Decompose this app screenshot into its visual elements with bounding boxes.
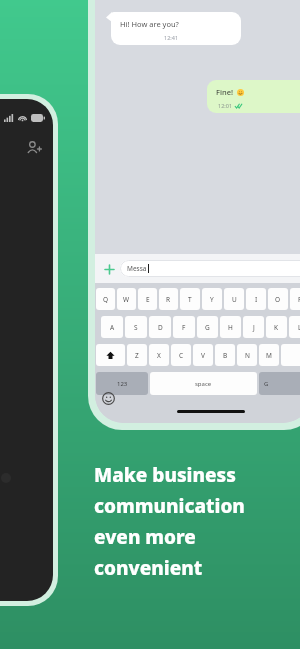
button[interactable]: G bbox=[259, 372, 300, 395]
button[interactable]: D bbox=[149, 316, 171, 338]
staticText: F bbox=[182, 323, 186, 332]
staticText: D bbox=[158, 323, 163, 332]
staticText: 123 bbox=[117, 380, 128, 388]
staticText: A bbox=[110, 323, 115, 332]
staticText: 12:01 bbox=[218, 102, 233, 109]
staticText: even more bbox=[94, 524, 196, 550]
staticText: 12:41 bbox=[164, 34, 179, 41]
staticText: G bbox=[205, 323, 210, 332]
staticText: N bbox=[245, 351, 250, 360]
button[interactable]: P bbox=[290, 288, 300, 310]
staticText: S bbox=[134, 323, 138, 332]
button[interactable]: Add contact bbox=[23, 137, 45, 159]
staticText: K bbox=[274, 323, 279, 332]
button[interactable]: T bbox=[180, 288, 200, 310]
button[interactable]: A bbox=[101, 316, 123, 338]
button[interactable]: space bbox=[150, 372, 257, 395]
button[interactable]: Attach bbox=[101, 261, 117, 277]
button[interactable]: M bbox=[259, 344, 279, 366]
button[interactable]: Shift bbox=[96, 344, 125, 366]
staticText: U bbox=[232, 295, 237, 304]
staticText: T bbox=[188, 295, 192, 304]
button[interactable]: E bbox=[138, 288, 157, 310]
button[interactable]: F bbox=[173, 316, 195, 338]
staticText: Make business bbox=[94, 462, 236, 488]
button[interactable]: Fine! bbox=[207, 80, 300, 113]
button[interactable]: G bbox=[197, 316, 218, 338]
staticText: R bbox=[166, 295, 171, 304]
staticText: Fine! bbox=[216, 87, 234, 97]
button[interactable]: Q bbox=[96, 288, 115, 310]
staticText: Messa bbox=[127, 264, 147, 273]
staticText: B bbox=[223, 351, 228, 360]
staticText: Q bbox=[103, 295, 109, 304]
staticText: H bbox=[228, 323, 233, 332]
staticText: J bbox=[253, 323, 255, 332]
staticText: O bbox=[275, 295, 281, 304]
button[interactable]: Backspace bbox=[281, 344, 300, 366]
staticText: M bbox=[266, 351, 272, 360]
button[interactable]: W bbox=[117, 288, 136, 310]
button[interactable]: J bbox=[243, 316, 264, 338]
staticText: space bbox=[195, 380, 212, 388]
staticText: P bbox=[298, 295, 300, 304]
button[interactable]: H bbox=[220, 316, 241, 338]
button[interactable]: R bbox=[159, 288, 178, 310]
button[interactable]: I bbox=[246, 288, 266, 310]
button[interactable]: X bbox=[149, 344, 169, 366]
button[interactable]: Messa bbox=[120, 260, 300, 277]
button[interactable]: Hi! How are you? bbox=[111, 12, 241, 45]
button[interactable]: U bbox=[224, 288, 244, 310]
button[interactable]: S bbox=[125, 316, 147, 338]
staticText: C bbox=[179, 351, 184, 360]
button[interactable]: L bbox=[289, 316, 300, 338]
button[interactable]: B bbox=[215, 344, 235, 366]
button[interactable]: V bbox=[193, 344, 213, 366]
staticText: Z bbox=[135, 351, 139, 360]
button[interactable]: O bbox=[268, 288, 288, 310]
staticText: X bbox=[157, 351, 161, 360]
staticText: communication bbox=[94, 493, 245, 519]
staticText: Hi! How are you? bbox=[120, 19, 179, 29]
staticText: V bbox=[201, 351, 205, 360]
button[interactable]: C bbox=[171, 344, 191, 366]
staticText: convenient bbox=[94, 555, 203, 581]
staticText: W bbox=[123, 295, 130, 304]
staticText: G bbox=[264, 380, 269, 388]
button[interactable]: Z bbox=[127, 344, 147, 366]
staticText: Y bbox=[210, 295, 214, 304]
button[interactable]: Emoji bbox=[102, 392, 115, 405]
button[interactable]: 123 bbox=[96, 372, 148, 395]
staticText: L bbox=[298, 323, 300, 332]
staticText: E bbox=[146, 295, 150, 304]
button[interactable]: Y bbox=[202, 288, 222, 310]
button[interactable]: K bbox=[266, 316, 287, 338]
staticText: I bbox=[255, 295, 258, 304]
button[interactable]: N bbox=[237, 344, 257, 366]
